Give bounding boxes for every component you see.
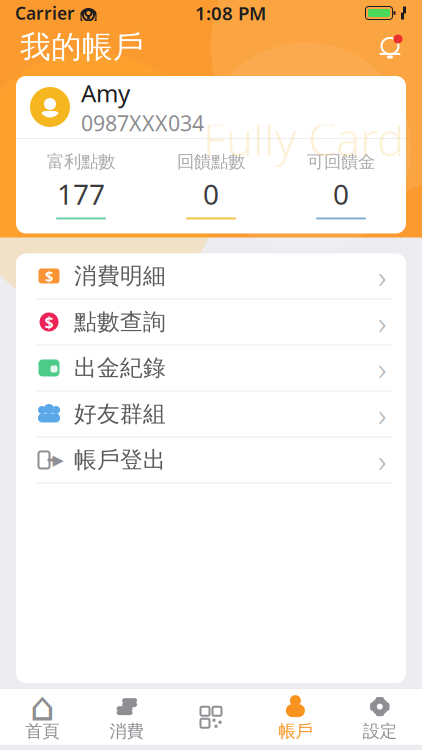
staticText: $ — [45, 266, 53, 286]
staticText: 好友群組 — [74, 400, 166, 428]
staticText: 回饋點數 — [177, 151, 245, 172]
staticText: 點數查詢 — [74, 308, 166, 336]
button[interactable]: Notifications — [370, 27, 410, 67]
staticText: 我的帳戶 — [20, 28, 144, 66]
button[interactable]: 好友群組 — [16, 391, 406, 437]
staticText: 帳戶登出 — [74, 446, 166, 474]
button[interactable]: 設定 — [338, 693, 422, 745]
button[interactable]: ▶ — [16, 437, 406, 483]
staticText: Amy — [81, 77, 130, 109]
button[interactable]: 出金紀錄 — [16, 345, 406, 391]
staticText: 0987XXX034 — [81, 109, 204, 137]
staticText: 0 — [333, 175, 349, 212]
button[interactable]: QR Code Scanner — [169, 693, 253, 745]
staticText: 0 — [203, 175, 219, 212]
button[interactable]: 消費 — [84, 693, 169, 745]
staticText: Fully Card — [203, 109, 404, 169]
button[interactable]: $ — [16, 299, 406, 345]
button[interactable]: $ — [16, 253, 406, 299]
button[interactable]: 首頁 — [0, 693, 84, 745]
staticText: › — [378, 439, 386, 481]
staticText: 1:08 PM — [195, 1, 266, 25]
staticText: 出金紀錄 — [74, 354, 166, 382]
staticText: 富利點數 — [47, 151, 115, 172]
staticText: 可回饋金 — [307, 151, 375, 172]
staticText: 消費明細 — [74, 262, 166, 290]
staticText: › — [378, 347, 386, 389]
staticText: 首頁 — [25, 721, 59, 742]
staticText: ▶ — [52, 452, 63, 468]
staticText: 設定 — [363, 721, 397, 742]
staticText: Carrier — [15, 1, 75, 24]
staticText: 177 — [57, 175, 105, 212]
staticText: › — [378, 301, 386, 343]
staticText: › — [378, 255, 386, 297]
staticText: 帳戶 — [278, 721, 312, 742]
staticText: 消費 — [110, 721, 144, 742]
staticText: $ — [44, 311, 53, 332]
button[interactable]: 帳戶 — [253, 693, 338, 745]
staticText: ⌂ — [30, 684, 55, 729]
staticText: › — [378, 393, 386, 435]
